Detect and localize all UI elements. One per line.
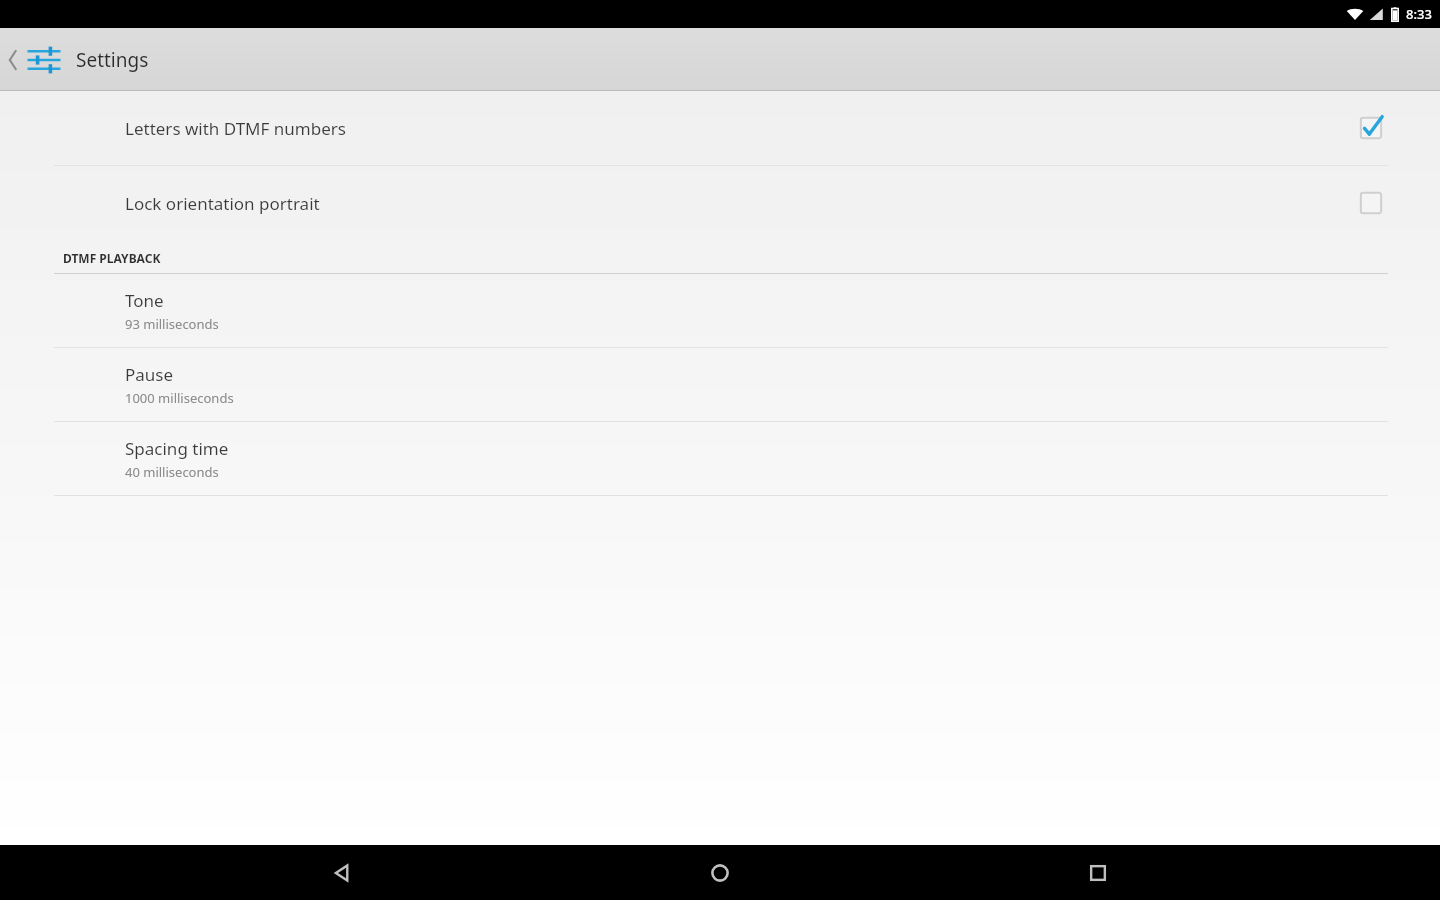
button[interactable]: Recent apps: [1062, 845, 1134, 900]
button[interactable]: Back: [306, 845, 378, 900]
staticText: 93 milliseconds: [125, 315, 219, 333]
button[interactable]: Home: [684, 845, 756, 900]
staticText: Settings: [76, 47, 149, 73]
staticText: Pause: [125, 363, 174, 386]
staticText: 40 milliseconds: [125, 463, 219, 481]
button[interactable]: Spacing time: [0, 422, 1440, 495]
staticText: DTMF PLAYBACK: [63, 250, 161, 266]
staticText: Spacing time: [125, 437, 229, 460]
button[interactable]: Navigate up, Settings: [4, 28, 70, 91]
staticText: Letters with DTMF numbers: [125, 117, 1354, 140]
button[interactable]: Lock orientation portrait: [0, 166, 1440, 240]
staticText: 8:33: [1406, 5, 1432, 23]
button[interactable]: Letters with DTMF numbers: [0, 91, 1440, 165]
staticText: Tone: [125, 289, 164, 312]
button[interactable]: Tone: [0, 274, 1440, 347]
staticText: 1000 milliseconds: [125, 389, 234, 407]
staticText: Lock orientation portrait: [125, 192, 1354, 215]
button[interactable]: Pause: [0, 348, 1440, 421]
